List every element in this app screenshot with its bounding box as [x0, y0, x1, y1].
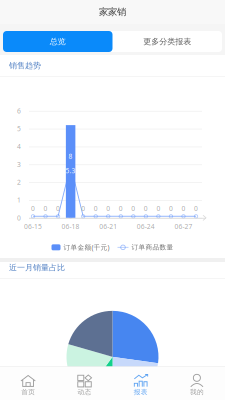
staticText: 订单金额(千元): [63, 243, 109, 252]
staticText: 5.3: [66, 166, 76, 175]
staticText: 0: [119, 204, 123, 213]
staticText: 2: [17, 178, 21, 187]
staticText: 0: [17, 213, 21, 222]
staticText: 销售趋势: [9, 61, 41, 70]
staticText: 家家销: [99, 6, 126, 18]
staticText: 订单商品数量: [131, 243, 173, 251]
staticText: 我的: [190, 388, 204, 396]
button[interactable]: 报表: [112, 367, 169, 400]
staticText: 0: [31, 204, 35, 213]
staticText: 0: [131, 204, 135, 213]
staticText: 1: [17, 196, 21, 204]
staticText: 6: [17, 106, 21, 115]
button[interactable]: 我的: [169, 367, 225, 400]
staticText: 0: [56, 204, 60, 213]
staticText: 8: [69, 152, 73, 161]
staticText: 0: [194, 204, 198, 213]
staticText: 0: [156, 204, 160, 213]
staticText: 0: [81, 204, 85, 213]
staticText: 0: [43, 204, 47, 213]
staticText: 5: [17, 124, 21, 133]
staticText: 0: [106, 204, 110, 213]
staticText: 4: [17, 142, 21, 151]
staticText: 06-18: [62, 222, 80, 231]
staticText: 06-21: [99, 222, 117, 231]
staticText: 06-27: [174, 222, 192, 231]
staticText: 首页: [21, 388, 35, 396]
button[interactable]: 动态: [56, 367, 112, 400]
staticText: 更多分类报表: [143, 37, 191, 46]
button[interactable]: 总览: [3, 31, 112, 52]
staticText: 0: [94, 204, 98, 213]
staticText: 动态: [77, 388, 91, 396]
button[interactable]: 首页: [0, 367, 56, 400]
staticText: 0: [169, 204, 173, 213]
staticText: 近一月销量占比: [9, 263, 65, 272]
button[interactable]: 更多分类报表: [112, 31, 222, 52]
staticText: 0: [144, 204, 148, 213]
staticText: 报表: [134, 388, 148, 396]
staticText: 3: [17, 160, 21, 169]
staticText: 总览: [50, 37, 66, 46]
staticText: 06-15: [24, 222, 42, 231]
staticText: 0: [181, 204, 185, 213]
staticText: 06-24: [137, 222, 155, 231]
